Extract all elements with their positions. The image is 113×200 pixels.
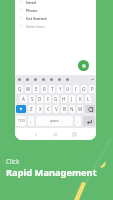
button[interactable]: Enter: [83, 116, 95, 126]
button[interactable]: D: [37, 95, 43, 103]
button[interactable]: Get Started: [15, 14, 96, 22]
button[interactable]: Tool 5: [55, 75, 63, 84]
button[interactable]: M: [77, 105, 83, 113]
staticText: Get Started: [26, 16, 47, 21]
staticText: P: [91, 86, 94, 92]
staticText: C: [47, 106, 50, 112]
button[interactable]: E: [33, 85, 39, 93]
button[interactable]: Tool 3: [39, 75, 47, 84]
button[interactable]: J: [69, 95, 75, 103]
button[interactable]: Q: [16, 85, 23, 93]
staticText: Email: [26, 0, 36, 5]
staticText: Q: [18, 86, 22, 92]
button[interactable]: R: [41, 85, 47, 93]
button[interactable]: P: [89, 85, 95, 93]
staticText: ?123: [18, 119, 25, 123]
staticText: H: [62, 96, 66, 102]
button[interactable]: I: [73, 85, 79, 93]
button[interactable]: .: [75, 116, 81, 126]
button[interactable]: Home: [46, 128, 65, 140]
staticText: G: [54, 96, 58, 102]
staticText: .: [77, 118, 79, 124]
button[interactable]: O: [81, 85, 87, 93]
button[interactable]: Recents: [65, 128, 84, 140]
staticText: B: [63, 106, 66, 112]
button[interactable]: W: [25, 85, 31, 93]
button[interactable]: N: [69, 105, 75, 113]
button[interactable]: G: [53, 95, 59, 103]
staticText: Z: [30, 106, 33, 112]
staticText: K: [79, 96, 82, 102]
button[interactable]: Z: [28, 105, 35, 113]
staticText: X: [39, 106, 42, 112]
staticText: L: [87, 96, 90, 102]
button[interactable]: H: [61, 95, 67, 103]
staticText: O: [82, 86, 86, 92]
staticText: A: [22, 96, 25, 102]
button[interactable]: Backspace: [85, 105, 95, 113]
staticText: M: [78, 106, 83, 112]
button[interactable]: Back: [27, 128, 46, 140]
staticText: R: [43, 86, 46, 92]
button[interactable]: U: [65, 85, 71, 93]
staticText: U: [66, 86, 70, 92]
button[interactable]: Y: [57, 85, 63, 93]
button[interactable]: V: [53, 105, 59, 113]
button[interactable]: space: [36, 116, 73, 126]
staticText: W: [26, 86, 31, 92]
button[interactable]: Tool 2: [31, 75, 39, 84]
staticText: E: [35, 86, 38, 92]
button[interactable]: Tool 0: [15, 75, 23, 84]
staticText: S: [31, 96, 34, 102]
staticText: Enter here: [26, 24, 45, 29]
button[interactable]: B: [61, 105, 67, 113]
button[interactable]: ,: [28, 116, 34, 126]
button[interactable]: Tool 1: [23, 75, 31, 84]
button[interactable]: ?123: [16, 116, 26, 126]
button[interactable]: F: [45, 95, 51, 103]
staticText: space: [50, 119, 59, 123]
button[interactable]: Phone: [15, 6, 96, 14]
button[interactable]: K: [77, 95, 83, 103]
staticText: I: [75, 86, 77, 92]
staticText: Phone: [26, 8, 38, 13]
staticText: V: [55, 106, 58, 112]
staticText: ,: [30, 118, 32, 124]
staticText: F: [47, 96, 50, 102]
button[interactable]: Tool 4: [47, 75, 55, 84]
button[interactable]: C: [45, 105, 51, 113]
staticText: N: [70, 106, 74, 112]
button[interactable]: X: [37, 105, 43, 113]
staticText: Rapid Management: [6, 166, 97, 179]
button[interactable]: A: [20, 95, 27, 103]
staticText: D: [38, 96, 42, 102]
staticText: Y: [59, 86, 62, 92]
staticText: T: [51, 86, 54, 92]
button[interactable]: Tool 6: [63, 75, 71, 84]
button[interactable]: Shift: [16, 105, 26, 113]
button[interactable]: Enter here: [15, 22, 96, 30]
staticText: J: [71, 96, 73, 102]
staticText: Click: [6, 157, 20, 165]
button[interactable]: Email: [15, 0, 96, 6]
button[interactable]: Add: [78, 60, 89, 71]
button[interactable]: More: [88, 75, 96, 84]
button[interactable]: S: [29, 95, 35, 103]
button[interactable]: T: [49, 85, 55, 93]
button[interactable]: L: [85, 95, 91, 103]
